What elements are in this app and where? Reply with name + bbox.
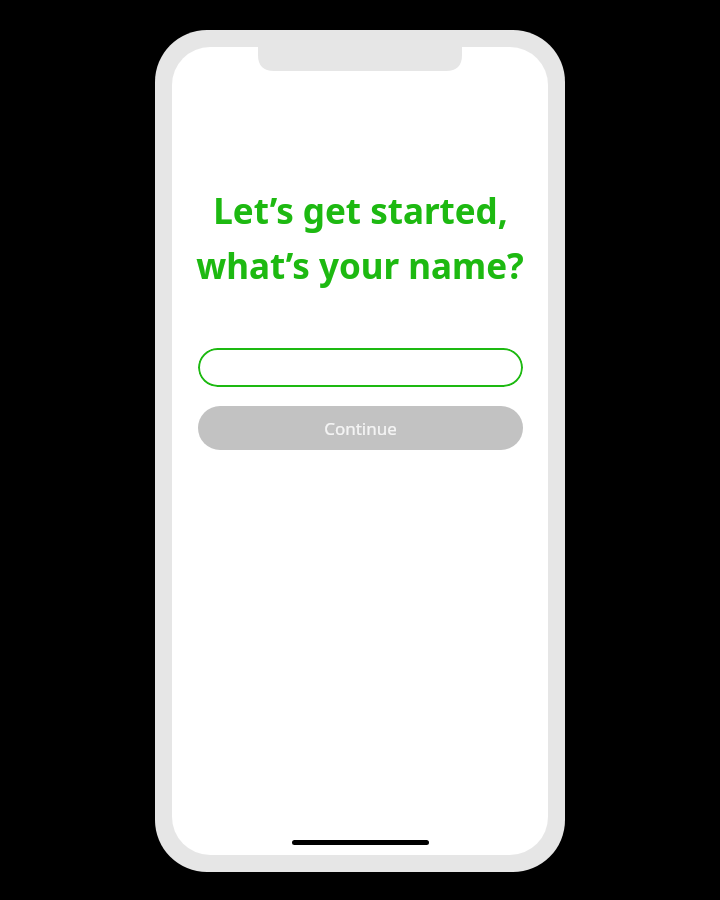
staticText: Let’s get started,: [213, 187, 508, 235]
button[interactable]: Name input field: [198, 348, 523, 387]
staticText: Continue: [324, 417, 397, 440]
staticText: what’s your name?: [196, 242, 524, 290]
button[interactable]: Continue: [198, 406, 523, 450]
